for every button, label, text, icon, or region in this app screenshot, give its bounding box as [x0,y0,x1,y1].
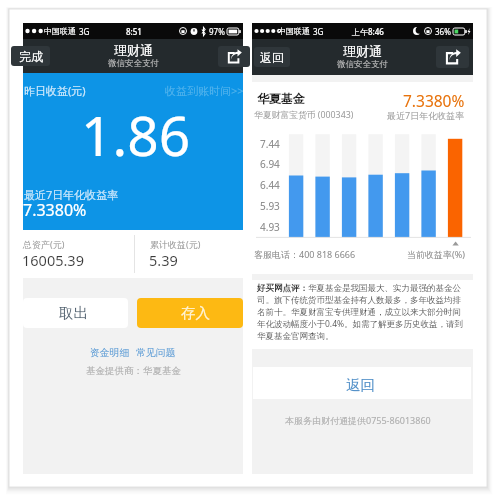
staticText: 上午8:46 [352,26,384,37]
staticText: 97% [209,26,225,37]
staticText: 5.93 [260,199,280,213]
staticText: 6.44 [260,178,280,192]
staticText: 微信安全支付 [337,59,388,70]
staticText: 返回 [260,50,284,65]
staticText: 36% [435,26,451,37]
staticText: 昨日收益(元) [24,83,86,98]
staticText: 4.93 [260,220,280,234]
staticText: 完成 [19,49,43,64]
staticText: 基金提供商：华夏基金 [86,365,181,377]
button[interactable]: 常见问题 [136,347,176,359]
button[interactable]: Share [218,46,250,67]
button[interactable]: 返回 [254,47,290,67]
button[interactable]: 资金明细 [90,347,130,359]
staticText: 华夏财富宝货币 (000343) [254,109,354,121]
staticText: 最近7日年化收益率 [24,187,119,202]
staticText: 本服务由财付通提供0755-86013860 [285,414,431,426]
button[interactable]: 取出 [23,298,128,328]
staticText: 理财通 [114,42,153,58]
button[interactable]: 返回 [253,367,471,399]
staticText: 中国联通 [278,26,310,36]
staticText: 8:51 [126,26,142,37]
staticText: 华夏基金 [257,91,305,106]
staticText: 累计收益(元) [150,238,201,250]
staticText: 微信安全支付 [108,58,159,69]
button[interactable]: 完成 [11,46,50,66]
button[interactable]: Share [436,46,469,68]
staticText: 最近7日年化收益率 [387,109,465,121]
staticText: 3G [313,26,324,37]
staticText: 返回 [346,376,375,394]
staticText: 总资产(元) [23,238,65,250]
staticText: 中国联通 [44,26,76,36]
staticText: 当前收益率(%) [407,248,465,260]
staticText: 7.44 [260,137,280,151]
staticText: 收益到账时间>> [165,83,244,98]
staticText: 取出 [59,304,88,322]
staticText: 6.94 [260,157,280,171]
staticText: 客服电话：400 818 6666 [254,248,356,260]
staticText: 5.39 [149,250,178,270]
staticText: 3G [79,26,90,37]
staticText: 7.3380% [403,90,465,111]
staticText: 好买网点评：华夏基金是我国最大、实力最强的基金公司。旗下传统货币型基金持有人数最… [257,283,468,341]
staticText: 7.3380% [23,199,87,221]
staticText: 16005.39 [22,250,84,270]
staticText: 理财通 [343,43,382,59]
button[interactable]: 存入 [137,298,243,328]
staticText: 存入 [181,304,210,322]
staticText: 1.86 [81,97,191,172]
